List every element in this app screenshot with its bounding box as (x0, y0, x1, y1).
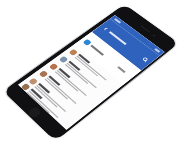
button[interactable] (18, 81, 72, 130)
button[interactable] (44, 59, 103, 108)
button[interactable] (24, 73, 83, 125)
button[interactable] (74, 32, 141, 85)
button[interactable]: Back (101, 25, 111, 32)
button[interactable]: Search (140, 55, 150, 63)
button[interactable] (64, 45, 123, 92)
button[interactable] (34, 66, 93, 117)
button[interactable] (54, 52, 113, 100)
